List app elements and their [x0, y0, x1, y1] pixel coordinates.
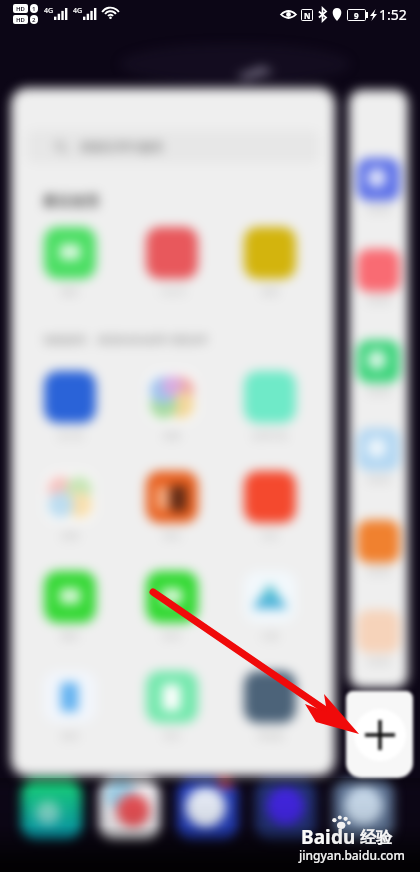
- button[interactable]: 应用市场: [244, 371, 296, 441]
- button[interactable]: 微信: [44, 571, 96, 641]
- button[interactable]: 微信: [44, 227, 96, 297]
- staticText: 4G: [73, 6, 83, 16]
- staticText: 微信: [61, 630, 79, 641]
- staticText: 最近使用: [43, 193, 99, 211]
- staticText: 经验: [360, 828, 392, 848]
- staticText: du: [331, 824, 356, 850]
- staticText: 小红书: [159, 286, 186, 297]
- button[interactable]: [349, 90, 408, 688]
- staticText: 4G: [44, 6, 54, 16]
- staticText: 京东: [261, 530, 279, 541]
- button[interactable]: 美团: [244, 227, 296, 297]
- button[interactable]: 淘宝: [146, 471, 198, 541]
- button[interactable]: 相册: [146, 371, 198, 441]
- staticText: 智能推荐，根据你的使用习惯排序: [43, 333, 208, 347]
- staticText: 电话: [163, 630, 181, 641]
- button[interactable]: 浏览器: [244, 671, 296, 741]
- button[interactable]: Phone: [21, 779, 82, 840]
- button[interactable]: 设置: [44, 471, 96, 541]
- staticText: jingyan.baidu.com: [299, 847, 405, 863]
- button[interactable]: Add new task: [346, 691, 413, 778]
- button[interactable]: 云盘: [244, 571, 296, 641]
- staticText: N: [304, 10, 311, 20]
- staticText: 1:52: [379, 5, 407, 24]
- button[interactable]: Browser: [255, 779, 316, 840]
- staticText: 1: [32, 5, 36, 13]
- button[interactable]: Gallery: [99, 779, 160, 840]
- staticText: 淘宝: [163, 530, 181, 541]
- button[interactable]: Camera: [333, 779, 394, 840]
- staticText: HD: [16, 16, 25, 24]
- staticText: 美团: [261, 286, 279, 297]
- staticText: HD: [16, 5, 25, 13]
- staticText: 浏览器: [257, 730, 284, 741]
- button[interactable]: 搜索应用与服务: [11, 88, 335, 776]
- staticText: 2: [32, 16, 36, 24]
- staticText: 微信: [61, 286, 79, 297]
- button[interactable]: Messages: [177, 779, 238, 840]
- button[interactable]: 支付宝: [44, 371, 96, 441]
- staticText: 支付宝: [57, 430, 84, 441]
- button[interactable]: 京东: [244, 471, 296, 541]
- button[interactable]: 短信: [44, 671, 96, 741]
- button[interactable]: 音乐: [146, 671, 198, 741]
- button[interactable]: 搜索应用与服务: [27, 130, 319, 163]
- staticText: 9: [354, 10, 359, 20]
- button[interactable]: 电话: [146, 571, 198, 641]
- staticText: Bai: [301, 824, 331, 850]
- staticText: 搜索应用与服务: [80, 139, 164, 154]
- button[interactable]: 小红书: [146, 227, 198, 297]
